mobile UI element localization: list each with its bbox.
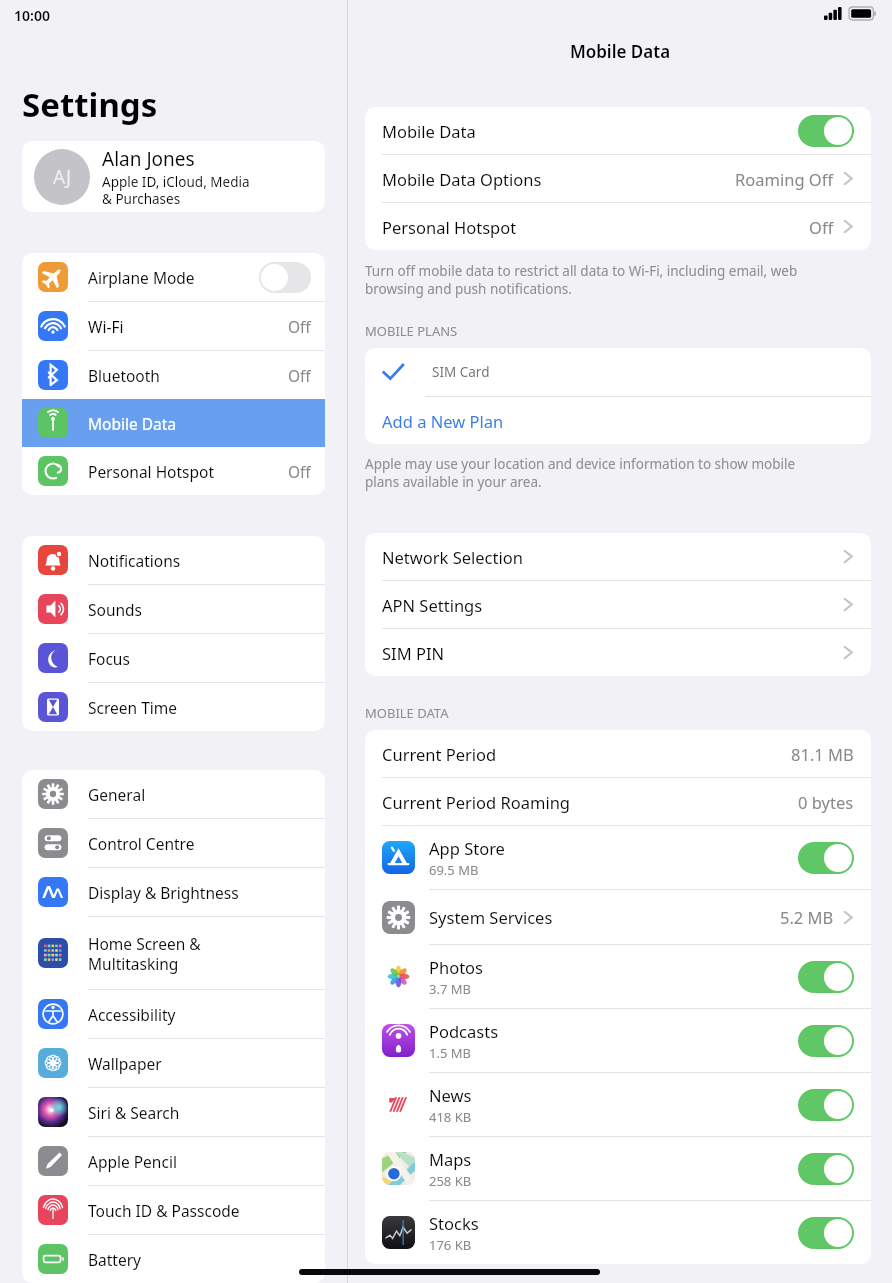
- staticText: Airplane Mode: [88, 267, 259, 288]
- button[interactable]: Off: [259, 262, 311, 293]
- staticText: Turn off mobile data to restrict all dat…: [365, 262, 798, 298]
- button[interactable]: Apple Pencil: [22, 1137, 325, 1185]
- button[interactable]: Control Centre: [22, 819, 325, 867]
- button[interactable]: Sounds: [22, 585, 325, 633]
- button[interactable]: Touch ID & Passcode: [22, 1186, 325, 1234]
- staticText: 3.7 MB: [429, 980, 471, 998]
- staticText: Settings: [22, 82, 158, 127]
- staticText: Stocks: [429, 1212, 479, 1234]
- staticText: 176 KB: [429, 1236, 472, 1254]
- staticText: Display & Brightness: [88, 882, 311, 903]
- staticText: Podcasts: [429, 1020, 499, 1042]
- button[interactable]: Siri & Search: [22, 1088, 325, 1136]
- staticText: Add a New Plan: [382, 410, 504, 432]
- staticText: Notifications: [88, 550, 311, 571]
- staticText: MOBILE PLANS: [365, 322, 458, 340]
- button[interactable]: Add a New Plan: [365, 397, 871, 444]
- staticText: Mobile Data: [348, 40, 892, 63]
- staticText: SIM PIN: [382, 642, 445, 664]
- button[interactable]: Personal Hotspot: [22, 447, 325, 495]
- staticText: Accessibility: [88, 1004, 311, 1025]
- staticText: Focus: [88, 648, 311, 669]
- staticText: Sounds: [88, 599, 311, 620]
- staticText: Apple ID, iCloud, Media & Purchases: [102, 173, 250, 208]
- staticText: 418 KB: [429, 1108, 472, 1126]
- button[interactable]: Wallpaper: [22, 1039, 325, 1087]
- button[interactable]: On: [798, 1025, 854, 1057]
- button[interactable]: On: [798, 1153, 854, 1185]
- button[interactable]: Maps: [365, 1137, 871, 1200]
- staticText: Screen Time: [88, 697, 311, 718]
- staticText: Apple may use your location and device i…: [365, 455, 796, 491]
- button[interactable]: Current Period: [365, 730, 871, 777]
- staticText: Wi-Fi: [88, 316, 288, 337]
- staticText: Personal Hotspot: [88, 461, 288, 482]
- button[interactable]: App Store: [365, 826, 871, 889]
- button[interactable]: Podcasts: [365, 1009, 871, 1072]
- staticText: Current Period: [382, 743, 497, 765]
- button[interactable]: Home Screen & Multitasking: [22, 917, 325, 989]
- staticText: General: [88, 784, 311, 805]
- staticText: Control Centre: [88, 833, 311, 854]
- staticText: Mobile Data: [88, 413, 311, 434]
- staticText: Touch ID & Passcode: [88, 1200, 311, 1221]
- button[interactable]: SIM PIN: [365, 629, 871, 676]
- staticText: SIM Card: [432, 363, 490, 381]
- button[interactable]: On: [798, 1217, 854, 1249]
- button[interactable]: Mobile Data: [365, 107, 871, 154]
- staticText: Roaming Off: [735, 168, 834, 190]
- button[interactable]: Current Period Roaming: [365, 778, 871, 825]
- staticText: System Services: [429, 906, 553, 928]
- staticText: 10:00: [14, 6, 50, 25]
- staticText: App Store: [429, 837, 505, 859]
- button[interactable]: General: [22, 770, 325, 818]
- staticText: 69.5 MB: [429, 861, 479, 879]
- staticText: Bluetooth: [88, 365, 288, 386]
- button[interactable]: Screen Time: [22, 683, 325, 731]
- button[interactable]: Mobile Data Options: [365, 155, 871, 202]
- button[interactable]: On: [798, 115, 854, 147]
- staticText: Off: [288, 461, 311, 482]
- staticText: AJ: [53, 164, 72, 190]
- button[interactable]: Network Selection: [365, 533, 871, 580]
- button[interactable]: Battery: [22, 1235, 325, 1283]
- button[interactable]: On: [798, 1089, 854, 1121]
- button[interactable]: Bluetooth: [22, 351, 325, 399]
- button[interactable]: On: [798, 961, 854, 993]
- button[interactable]: SIM Card: [365, 348, 871, 396]
- staticText: Battery: [88, 1249, 311, 1270]
- staticText: Off: [809, 216, 834, 238]
- staticText: Current Period Roaming: [382, 791, 570, 813]
- button[interactable]: Stocks: [365, 1201, 871, 1264]
- staticText: Personal Hotspot: [382, 216, 517, 238]
- button[interactable]: On: [798, 842, 854, 874]
- button[interactable]: Focus: [22, 634, 325, 682]
- staticText: Alan Jones: [102, 146, 195, 172]
- staticText: Home Screen & Multitasking: [88, 933, 311, 974]
- button[interactable]: System Services: [365, 890, 871, 944]
- button[interactable]: Wi-Fi: [22, 302, 325, 350]
- staticText: Mobile Data Options: [382, 168, 542, 190]
- button[interactable]: Mobile Data: [22, 399, 325, 447]
- button[interactable]: Personal Hotspot: [365, 203, 871, 250]
- button[interactable]: Display & Brightness: [22, 868, 325, 916]
- staticText: 258 KB: [429, 1172, 472, 1190]
- staticText: 5.2 MB: [780, 906, 834, 928]
- staticText: Network Selection: [382, 546, 523, 568]
- button[interactable]: Accessibility: [22, 990, 325, 1038]
- staticText: Siri & Search: [88, 1102, 311, 1123]
- button[interactable]: APN Settings: [365, 581, 871, 628]
- staticText: 1.5 MB: [429, 1044, 471, 1062]
- staticText: 0 bytes: [798, 791, 854, 813]
- button[interactable]: Airplane Mode: [22, 253, 325, 301]
- staticText: Apple Pencil: [88, 1151, 311, 1172]
- button[interactable]: AJ: [22, 141, 325, 212]
- button[interactable]: Notifications: [22, 536, 325, 584]
- staticText: 81.1 MB: [791, 743, 854, 765]
- staticText: MOBILE DATA: [365, 704, 449, 722]
- staticText: Wallpaper: [88, 1053, 311, 1074]
- staticText: Maps: [429, 1148, 472, 1170]
- button[interactable]: Photos: [365, 945, 871, 1008]
- staticText: Mobile Data: [382, 120, 476, 142]
- button[interactable]: News: [365, 1073, 871, 1136]
